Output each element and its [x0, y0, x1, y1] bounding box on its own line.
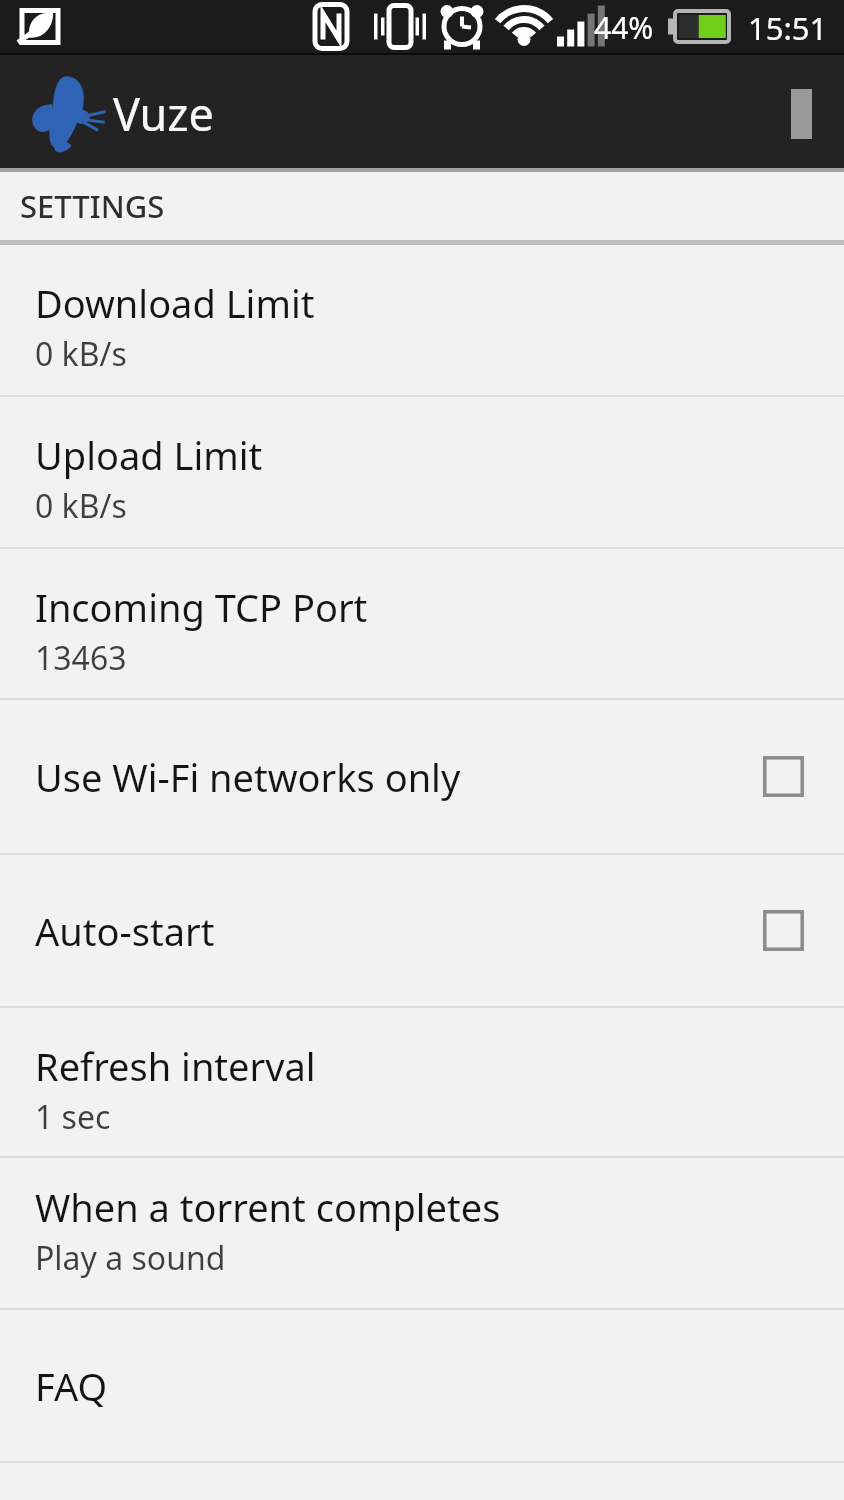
button[interactable]: Auto-start	[0, 855, 844, 1006]
staticText: 1 sec	[35, 1095, 111, 1139]
staticText: SETTINGS	[20, 185, 165, 227]
staticText: 0 kB/s	[35, 332, 127, 376]
staticText: Play a sound	[35, 1236, 226, 1280]
button[interactable]: Incoming TCP Port	[0, 549, 844, 698]
staticText: Vuze	[113, 83, 214, 144]
button[interactable]: Use Wi-Fi networks only	[0, 700, 844, 853]
staticText: Download Limit	[35, 277, 315, 329]
staticText: 13463	[35, 636, 127, 680]
button[interactable]: When a torrent completes	[0, 1158, 844, 1308]
staticText: Use Wi-Fi networks only	[35, 751, 763, 803]
button[interactable]: FAQ	[0, 1310, 844, 1461]
staticText: When a torrent completes	[35, 1181, 501, 1233]
staticText: 0 kB/s	[35, 484, 127, 528]
button[interactable]: Refresh interval	[0, 1008, 844, 1156]
staticText: Refresh interval	[35, 1040, 316, 1092]
button[interactable]: More options	[758, 55, 844, 172]
button[interactable]: Download Limit	[0, 245, 844, 395]
button[interactable]: Upload Limit	[0, 397, 844, 547]
staticText: Upload Limit	[35, 429, 263, 481]
staticText: FAQ	[35, 1360, 108, 1412]
staticText: 44%	[594, 7, 654, 48]
staticText: 15:51	[748, 7, 828, 49]
staticText: Auto-start	[35, 905, 763, 957]
staticText: Incoming TCP Port	[35, 581, 368, 633]
